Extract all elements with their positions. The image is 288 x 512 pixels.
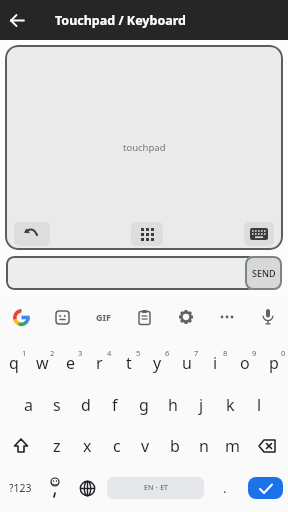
staticText: 5 xyxy=(136,348,141,358)
staticText: g xyxy=(139,394,149,416)
staticText: 4 xyxy=(107,348,112,358)
button[interactable] xyxy=(0,425,42,467)
button[interactable] xyxy=(248,477,283,499)
button[interactable]: EN・ET xyxy=(107,477,204,499)
button[interactable] xyxy=(244,222,274,246)
staticText: 6 xyxy=(165,348,170,358)
staticText: x xyxy=(83,435,92,457)
button[interactable]: b xyxy=(160,425,189,467)
button[interactable]: k xyxy=(216,384,245,425)
button[interactable] xyxy=(247,425,288,467)
staticText: q xyxy=(9,352,19,374)
staticText: t xyxy=(126,352,132,374)
staticText: GIF xyxy=(96,311,111,323)
staticText: 8 xyxy=(223,348,228,358)
staticText: 9 xyxy=(252,348,257,358)
button[interactable] xyxy=(247,295,288,339)
staticText: 1 xyxy=(22,348,27,358)
button[interactable] xyxy=(124,295,165,339)
staticText: h xyxy=(168,394,178,416)
button[interactable] xyxy=(206,295,247,339)
staticText: l xyxy=(257,394,262,416)
button[interactable]: l xyxy=(245,384,274,425)
button[interactable]: v xyxy=(131,425,160,467)
button[interactable]: s xyxy=(42,384,71,425)
button[interactable]: x xyxy=(72,425,102,467)
staticText: ?123 xyxy=(9,481,32,495)
staticText: v xyxy=(141,435,150,457)
staticText: o xyxy=(240,352,250,374)
staticText: f xyxy=(112,394,118,416)
staticText: e xyxy=(66,352,76,374)
button[interactable] xyxy=(131,222,163,246)
button[interactable]: ?123 xyxy=(0,477,40,499)
staticText: u xyxy=(182,352,192,374)
button[interactable]: t xyxy=(114,342,143,384)
button[interactable]: w xyxy=(28,342,56,384)
button[interactable]: f xyxy=(100,384,129,425)
staticText: c xyxy=(113,435,121,457)
button[interactable]: g xyxy=(129,384,158,425)
button[interactable]: r xyxy=(85,342,114,384)
staticText: i xyxy=(213,352,218,374)
staticText: EN・ET xyxy=(144,483,168,493)
staticText: s xyxy=(53,394,61,416)
staticText: 2 xyxy=(50,348,55,358)
staticText: k xyxy=(226,394,235,416)
button[interactable] xyxy=(40,477,70,499)
button[interactable]: a xyxy=(14,384,42,425)
button[interactable] xyxy=(165,295,206,339)
button[interactable] xyxy=(0,295,42,339)
button[interactable]: h xyxy=(158,384,187,425)
button[interactable]: c xyxy=(102,425,131,467)
button[interactable] xyxy=(42,295,83,339)
staticText: Touchpad / Keyboard xyxy=(55,12,186,29)
button[interactable]: j xyxy=(187,384,216,425)
staticText: touchpad xyxy=(123,141,166,154)
button[interactable] xyxy=(70,477,104,499)
staticText: . xyxy=(223,479,227,497)
staticText: m xyxy=(225,435,240,457)
staticText: r xyxy=(96,352,103,374)
staticText: y xyxy=(153,352,162,374)
button[interactable]: u xyxy=(172,342,201,384)
button[interactable]: Touchpad / Keyboard xyxy=(0,0,288,40)
button[interactable]: e xyxy=(56,342,85,384)
staticText: 3 xyxy=(78,348,83,358)
staticText: p xyxy=(269,352,279,374)
button[interactable]: SEND xyxy=(245,256,282,290)
staticText: a xyxy=(24,394,33,416)
staticText: 7 xyxy=(194,348,199,358)
button[interactable] xyxy=(10,13,25,28)
staticText: z xyxy=(53,435,61,457)
button[interactable]: touchpad xyxy=(5,45,283,250)
staticText: w xyxy=(36,352,49,374)
staticText: n xyxy=(199,435,209,457)
button[interactable]: d xyxy=(71,384,100,425)
staticText: 0 xyxy=(281,348,286,358)
staticText: b xyxy=(170,435,180,457)
button[interactable]: p xyxy=(259,342,288,384)
button[interactable]: q xyxy=(0,342,28,384)
staticText: j xyxy=(199,394,204,416)
button[interactable]: z xyxy=(42,425,72,467)
button[interactable]: GIF xyxy=(83,295,124,339)
button[interactable]: . xyxy=(207,477,243,499)
button[interactable] xyxy=(14,222,50,246)
button[interactable]: n xyxy=(189,425,218,467)
button[interactable]: o xyxy=(230,342,259,384)
button[interactable]: i xyxy=(201,342,230,384)
staticText: d xyxy=(81,394,91,416)
button[interactable]: y xyxy=(143,342,172,384)
staticText: SEND xyxy=(252,267,276,279)
button[interactable]: m xyxy=(218,425,247,467)
button[interactable] xyxy=(6,256,282,290)
